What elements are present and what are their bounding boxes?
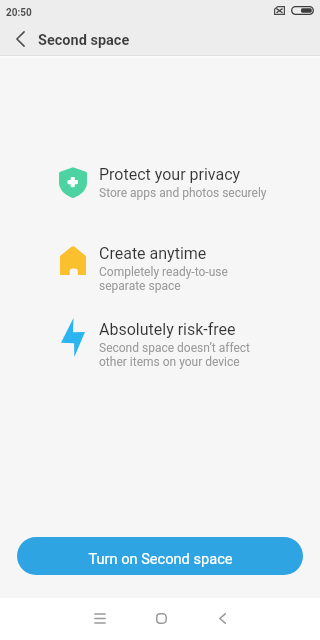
staticText: Second space [38, 32, 130, 49]
button[interactable]: Turn on Second space [17, 537, 303, 575]
staticText: Second space doesn’t affect [99, 341, 250, 355]
staticText: Turn on Second space [88, 550, 233, 567]
staticText: 20:50 [6, 7, 32, 19]
staticText: separate space [99, 279, 181, 293]
button[interactable]: Back [5, 24, 35, 56]
staticText: other items on your device [99, 355, 240, 369]
staticText: Store apps and photos securely [99, 186, 267, 200]
button[interactable]: Recent apps [76, 598, 124, 640]
staticText: Absolutely risk-free [99, 320, 236, 339]
staticText: Create anytime [99, 244, 207, 263]
staticText: Completely ready-to-use [99, 265, 228, 279]
staticText: Protect your privacy [99, 165, 241, 184]
button[interactable]: Back [198, 598, 246, 640]
button[interactable]: Home [137, 598, 185, 640]
